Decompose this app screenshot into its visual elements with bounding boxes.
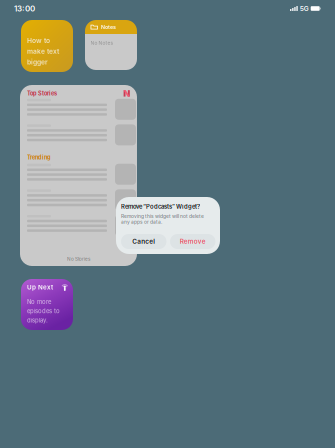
staticText: Trending <box>27 154 51 161</box>
staticText: any apps or data. <box>121 219 162 225</box>
staticText: 13:00 <box>14 4 35 13</box>
staticText: Notes <box>101 24 116 30</box>
staticText: Remove <box>180 238 206 245</box>
button[interactable]: Top Stories <box>20 85 137 266</box>
staticText: episodes to <box>27 308 60 315</box>
staticText: Top Stories <box>27 90 57 97</box>
staticText: bigger <box>27 58 48 66</box>
staticText: Removing this widget will not delete <box>121 213 204 219</box>
staticText: make text <box>27 47 59 55</box>
button[interactable]: Cancel <box>121 234 166 249</box>
staticText: How to <box>27 37 50 45</box>
staticText: No Stories <box>67 256 90 262</box>
staticText: 5G <box>300 4 309 13</box>
button[interactable]: Remove <box>170 234 215 249</box>
staticText: No Notes <box>90 40 113 46</box>
staticText: display. <box>27 317 48 324</box>
button[interactable]: How to <box>21 20 73 72</box>
staticText: Remove “Podcasts” Widget? <box>121 203 200 210</box>
staticText: No more <box>27 298 51 305</box>
button[interactable]: Notes <box>85 20 137 70</box>
staticText: Up Next <box>27 283 53 291</box>
button[interactable]: Up Next <box>21 279 73 330</box>
staticText: Cancel <box>132 238 155 245</box>
